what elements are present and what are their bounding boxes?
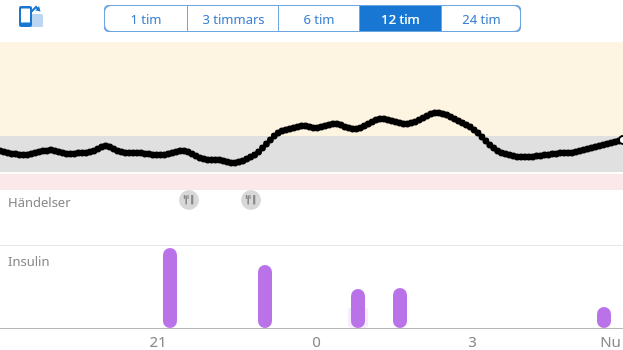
button[interactable]: 1 tim xyxy=(104,5,187,32)
staticText: 3 timmars xyxy=(202,10,265,28)
button[interactable]: Insulin dose xyxy=(351,289,365,328)
staticText: Insulin xyxy=(8,252,50,270)
button[interactable]: 6 tim xyxy=(279,5,359,32)
button[interactable]: 24 tim xyxy=(442,5,521,32)
button[interactable]: 12 tim xyxy=(360,5,441,32)
button[interactable]: Insulin dose xyxy=(597,307,611,328)
button[interactable]: Rotate screen xyxy=(14,3,54,33)
button[interactable]: Insulin dose xyxy=(258,265,272,328)
staticText: 0 xyxy=(312,331,321,349)
staticText: Händelser xyxy=(8,193,71,211)
staticText: Nu xyxy=(600,331,621,349)
button[interactable]: Meal event xyxy=(179,190,199,210)
staticText: 3 xyxy=(468,331,477,349)
button[interactable]: Insulin dose xyxy=(393,288,407,328)
staticText: 21 xyxy=(149,331,167,349)
staticText: 24 tim xyxy=(462,10,501,28)
button[interactable]: Meal event xyxy=(241,190,261,210)
staticText: 6 tim xyxy=(303,10,335,28)
button[interactable]: Insulin dose xyxy=(163,248,177,328)
button[interactable]: 3 timmars xyxy=(188,5,278,32)
staticText: 12 tim xyxy=(381,10,420,28)
staticText: 1 tim xyxy=(130,10,162,28)
